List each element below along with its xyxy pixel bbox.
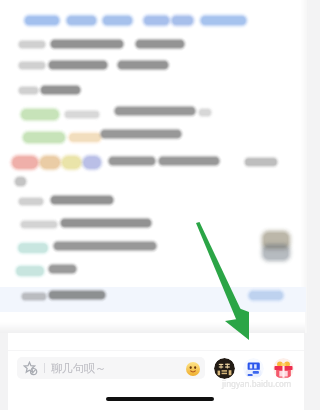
staticText: jingyan.baidu.com: [222, 378, 292, 389]
staticText: 聊几句呗～: [51, 361, 106, 375]
button[interactable]: Anniversary campaign: [214, 358, 235, 379]
other: Sticker disabled: [24, 362, 37, 375]
button[interactable]: Gift: [273, 358, 294, 379]
button[interactable]: Sticker disabled: [17, 357, 205, 379]
button[interactable]: Emoji: [186, 362, 200, 376]
button[interactable]: Blue campaign badge: [243, 358, 264, 379]
